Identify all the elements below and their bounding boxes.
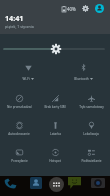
staticText: Tryb samolotowy [79,105,104,109]
staticText: Hotspot [49,159,61,163]
button[interactable]: Settings [82,5,89,12]
button[interactable]: Contacts [30,177,42,189]
button[interactable]: Podświetlanie [73,142,109,166]
staticText: Przesyłanie [11,159,28,163]
staticText: Wi-Fi [22,77,30,81]
staticText: 40% [67,6,76,12]
button[interactable]: Camera [91,178,105,188]
button[interactable]: Przesyłanie [1,142,37,166]
button[interactable]: All apps [49,177,64,192]
button[interactable]: Nie przeszkadzać [1,88,37,111]
staticText: Nie przeszkadzać [7,105,32,109]
button[interactable]: Wi-Fi [1,57,55,83]
staticText: Brak karty SIM [44,105,66,109]
button[interactable]: Messages [68,177,81,189]
staticText: piątek, 1 stycznia [5,24,34,29]
button[interactable]: Brak karty SIM [37,88,73,111]
staticText: Lokalizacja [83,132,99,136]
button[interactable]: Bluetooth [56,57,110,83]
staticText: 14:41 [5,13,24,23]
staticText: Bluetooth [74,77,89,81]
button[interactable]: Phone [4,178,17,189]
staticText: Latarka [50,132,61,136]
button[interactable]: Latarka [37,115,73,139]
button[interactable]: Autoobracanie [1,115,37,139]
button[interactable]: Brightness [0,39,110,59]
button[interactable]: User profile [95,4,104,13]
staticText: Autoobracanie [8,132,30,136]
button[interactable]: Tryb samolotowy [73,88,109,111]
staticText: Podświetlanie [81,159,102,163]
button[interactable]: Hotspot [37,142,73,166]
button[interactable]: Lokalizacja [73,115,109,139]
